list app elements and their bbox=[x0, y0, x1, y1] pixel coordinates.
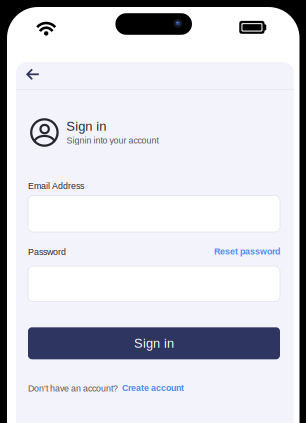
staticText: Reset password bbox=[214, 246, 280, 256]
staticText: Don't have an account? bbox=[28, 383, 118, 393]
staticText: Signin into your account bbox=[67, 135, 159, 145]
staticText: Password bbox=[28, 247, 66, 257]
staticText: Sign in bbox=[66, 119, 106, 133]
button[interactable]: Create account bbox=[122, 383, 212, 396]
button[interactable]: Back bbox=[16, 62, 70, 89]
button[interactable]: Sign in bbox=[28, 327, 280, 359]
staticText: Sign in bbox=[134, 336, 174, 350]
staticText: Create account bbox=[122, 383, 184, 393]
button[interactable]: Reset password bbox=[210, 246, 280, 258]
staticText: Email Address bbox=[28, 181, 84, 191]
